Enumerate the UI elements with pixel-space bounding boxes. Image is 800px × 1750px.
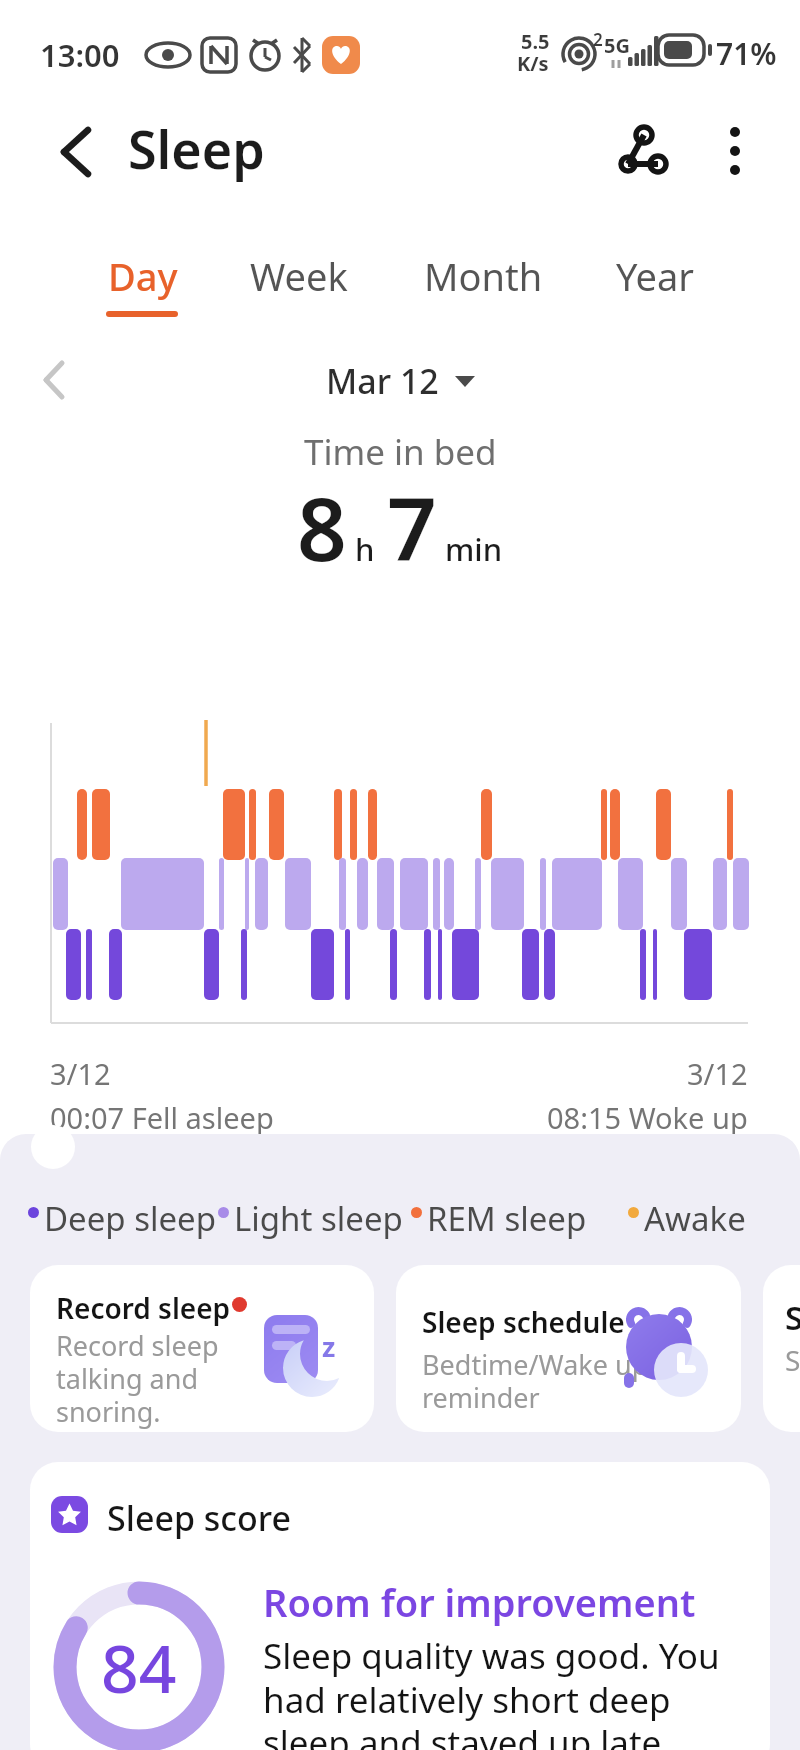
staticText: Sleep schedule	[422, 1303, 625, 1341]
staticText: Record sleep talking and snoring.	[56, 1327, 219, 1430]
staticText: Month	[424, 250, 543, 302]
staticText: 8	[297, 468, 347, 586]
button[interactable]: Sleep score	[30, 1462, 770, 1750]
staticText: Awake	[644, 1196, 746, 1241]
button[interactable]	[40, 360, 68, 402]
staticText: Sleep quality was good. You had relative…	[263, 1632, 720, 1750]
staticText: Room for improvement	[263, 1576, 696, 1628]
staticText: 13:00	[40, 34, 120, 76]
staticText: 3/12	[687, 1054, 748, 1093]
staticText: K/s	[517, 50, 549, 77]
staticText: z	[322, 1328, 336, 1365]
button[interactable]: Sl	[763, 1265, 800, 1432]
button[interactable]	[455, 374, 475, 388]
staticText: 5.5	[521, 28, 550, 55]
staticText: Week	[250, 250, 348, 302]
staticText: min	[445, 528, 503, 570]
button[interactable]: Month	[410, 244, 529, 296]
staticText: Mar 12	[326, 358, 439, 404]
staticText: Light sleep	[234, 1196, 403, 1241]
button[interactable]	[610, 118, 676, 184]
button[interactable]	[58, 126, 96, 178]
button[interactable]: Year	[602, 244, 681, 296]
staticText: 71%	[716, 33, 777, 74]
staticText: Sl	[785, 1341, 800, 1379]
staticText: Sleep score	[107, 1495, 292, 1541]
staticText: REM sleep	[427, 1196, 587, 1241]
button[interactable]: Record sleep	[30, 1265, 374, 1432]
staticText: Record sleep	[56, 1289, 231, 1327]
staticText: Sleep	[128, 113, 265, 184]
button[interactable]	[722, 118, 748, 184]
staticText: 84	[101, 1622, 177, 1712]
staticText: Deep sleep	[44, 1196, 217, 1241]
staticText: Day	[108, 250, 178, 302]
staticText: Time in bed	[304, 428, 497, 476]
staticText: Year	[616, 250, 695, 302]
staticText: h	[355, 528, 375, 570]
staticText: 7	[387, 468, 437, 586]
staticText: Bedtime/Wake up reminder	[422, 1346, 649, 1416]
staticText: 08:15 Woke up	[547, 1098, 748, 1137]
staticText: Sl	[785, 1295, 800, 1340]
staticText: 00:07 Fell asleep	[50, 1098, 274, 1137]
button[interactable]: Day	[90, 244, 160, 296]
staticText: 5G	[604, 32, 630, 59]
button[interactable]: Sleep schedule	[396, 1265, 741, 1432]
staticText: 2	[593, 28, 603, 51]
staticText: 3/12	[50, 1054, 111, 1093]
button[interactable]: Week	[235, 244, 333, 296]
